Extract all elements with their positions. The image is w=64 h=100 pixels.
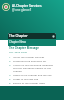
button[interactable]: 4. <box>9 73 55 76</box>
button[interactable]: The Chapter <box>8 33 56 39</box>
button[interactable]: 2. <box>9 59 55 62</box>
button[interactable]: 6. <box>9 81 55 84</box>
staticText: The Chapter <box>9 34 28 38</box>
staticText: The Chapter Message <box>9 46 39 50</box>
staticText: 4. <box>9 73 12 76</box>
staticText: 2. <box>9 59 12 62</box>
staticText: Oct. 2020 Issue <box>9 50 27 53</box>
button[interactable]: 3. <box>9 63 55 72</box>
button[interactable]: Chapter News <box>8 39 56 46</box>
staticText: Traffic to the new site <box>13 77 39 80</box>
button[interactable]: App logo <box>2 3 10 11</box>
staticText: Al-Chapter Services <box>12 4 42 8</box>
staticText: About the chapter services <box>13 55 45 58</box>
staticText: 1. <box>9 55 12 58</box>
staticText: Notice on the upcoming meetings and the … <box>13 63 55 72</box>
button[interactable]: 5. <box>9 77 55 80</box>
staticText: 3. <box>9 63 12 66</box>
staticText: Buyers of the chapter news <box>13 81 46 84</box>
staticText: @ one glance!! <box>12 8 32 12</box>
staticText: Chapter News <box>9 40 27 44</box>
staticText: 5. <box>9 77 12 80</box>
staticText: 6. <box>9 81 12 84</box>
button[interactable]: 1. <box>9 55 55 58</box>
other: More options <box>52 35 55 38</box>
staticText: Office of the chapter and the link <box>13 73 52 76</box>
staticText: Presenting the members list <box>13 59 47 62</box>
